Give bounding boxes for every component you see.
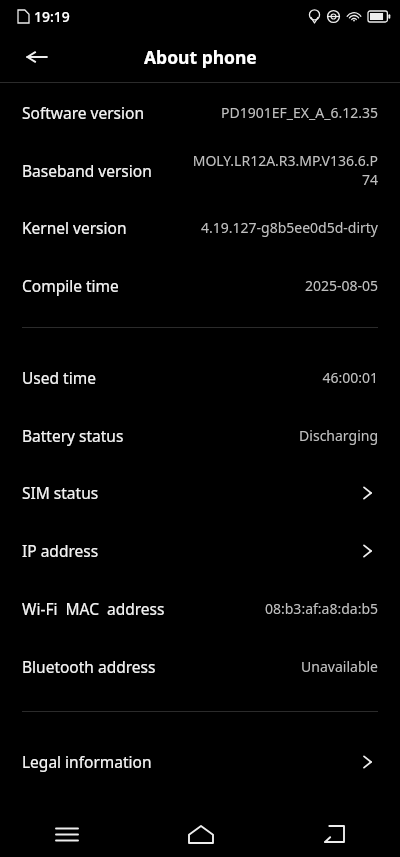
button[interactable]: Back [267, 811, 400, 857]
staticText: Discharging [299, 426, 378, 445]
staticText: Compile time [22, 275, 119, 296]
staticText: Battery status [22, 425, 124, 446]
button[interactable]: IP address [0, 521, 400, 579]
button[interactable]: Compile time [0, 256, 400, 314]
button[interactable]: Legal information [0, 732, 400, 790]
staticText: 19:19 [34, 7, 70, 26]
button[interactable]: Home [134, 811, 267, 857]
staticText: 4.19.127-g8b5ee0d5d-dirty [200, 218, 378, 237]
button[interactable]: Battery status [0, 406, 400, 464]
staticText: Wi-Fi MAC address [22, 598, 165, 619]
staticText: Legal information [22, 751, 152, 772]
button[interactable]: Bluetooth address [0, 637, 400, 695]
staticText: MOLY.LR12A.R3.MP.V136.6.P 74 [192, 151, 378, 189]
button[interactable]: Back [14, 34, 60, 80]
staticText: PD1901EF_EX_A_6.12.35 [221, 103, 378, 122]
button[interactable]: SIM status [0, 463, 400, 521]
staticText: 2025-08-05 [304, 276, 378, 295]
staticText: SIM status [22, 482, 99, 503]
staticText: 46:00:01 [322, 368, 378, 387]
button[interactable]: Kernel version [0, 198, 400, 256]
button[interactable]: Used time [0, 348, 400, 406]
staticText: Software version [22, 102, 144, 123]
staticText: IP address [22, 540, 99, 561]
button[interactable]: Wi-Fi MAC address [0, 579, 400, 637]
staticText: About phone [144, 45, 257, 69]
staticText: Kernel version [22, 217, 127, 238]
staticText: Used time [22, 367, 96, 388]
staticText: 08:b3:af:a8:da:b5 [264, 599, 378, 618]
button[interactable]: Recent apps [0, 811, 134, 857]
staticText: Unavailable [301, 657, 378, 676]
button[interactable]: Software version [0, 83, 400, 141]
staticText: Bluetooth address [22, 656, 156, 677]
button[interactable]: Baseband version [0, 141, 400, 199]
staticText: Baseband version [22, 160, 152, 181]
